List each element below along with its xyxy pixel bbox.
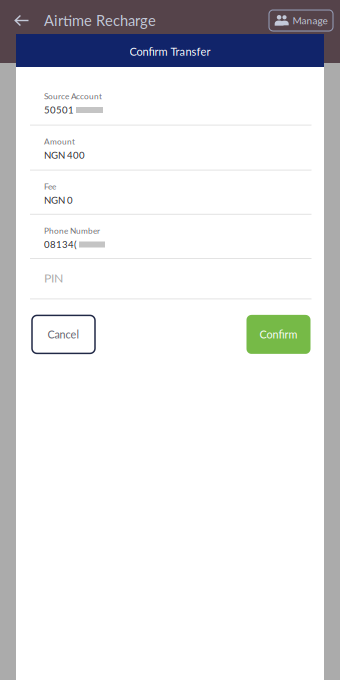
staticText: NGN 400	[44, 149, 85, 161]
staticText: Manage	[292, 14, 327, 26]
button[interactable]: Confirm	[246, 315, 310, 354]
staticText: Fee	[44, 181, 56, 191]
button[interactable]: Cancel	[32, 315, 95, 353]
staticText: Airtime Recharge	[44, 11, 156, 29]
staticText: Amount	[44, 136, 75, 146]
button[interactable]: Back	[0, 0, 44, 41]
button[interactable]: Manage	[269, 10, 333, 31]
staticText: 08134(	[44, 238, 77, 250]
staticText: Cancel	[47, 328, 79, 341]
staticText: Confirm	[259, 328, 297, 341]
staticText: Source Account	[44, 91, 102, 101]
staticText: Confirm Transfer	[129, 45, 210, 58]
staticText: 50501	[44, 104, 74, 115]
staticText: Phone Number	[44, 225, 100, 235]
staticText: PIN	[44, 270, 63, 285]
staticText: NGN 0	[44, 194, 73, 206]
